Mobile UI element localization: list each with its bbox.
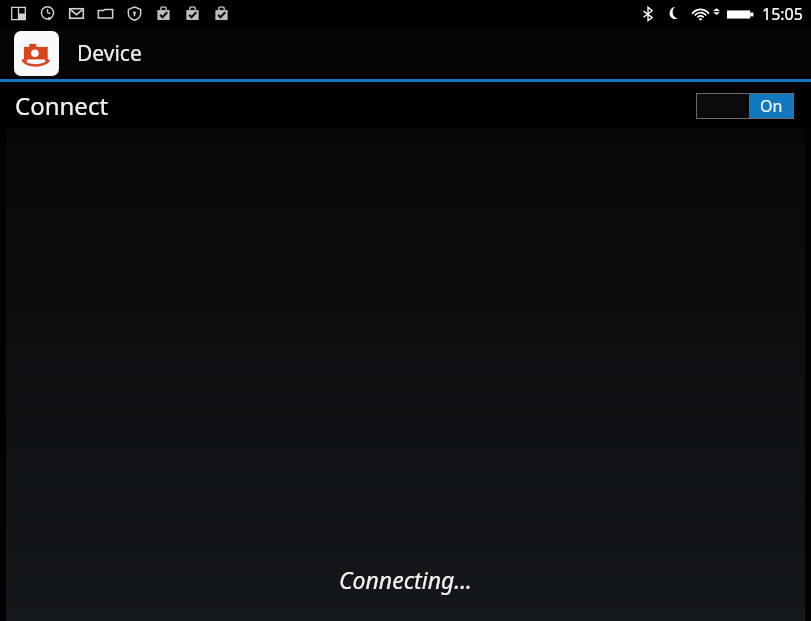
staticText: 15:05 [762, 3, 803, 25]
button[interactable]: Connect toggle, On [696, 93, 794, 119]
staticText: On [760, 95, 783, 117]
button[interactable]: Device [0, 27, 811, 79]
staticText: Device [77, 39, 142, 68]
staticText: Connect [15, 89, 109, 122]
staticText: Connecting... [6, 564, 805, 595]
